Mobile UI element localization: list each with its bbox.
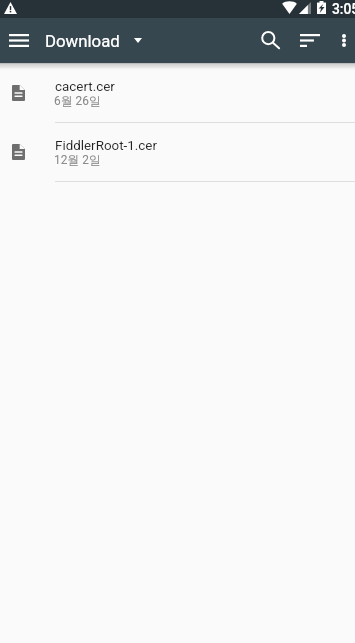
staticText: cacert.cer [55,79,115,95]
staticText: 6월 26일 [54,94,101,109]
button[interactable]: Search [249,18,288,63]
button[interactable]: Open navigation drawer [0,18,37,63]
staticText: 3:05 [332,1,355,17]
staticText: FiddlerRoot-1.cer [55,138,157,154]
button[interactable]: Sort [290,18,330,63]
staticText: 12월 2일 [54,153,101,168]
button[interactable]: FiddlerRoot-1.cer [0,123,355,182]
staticText: Download [45,31,120,51]
button[interactable]: Download [45,18,125,63]
button[interactable]: Change folder [125,20,150,61]
button[interactable]: cacert.cer [0,64,355,123]
button[interactable]: More options [332,18,355,63]
